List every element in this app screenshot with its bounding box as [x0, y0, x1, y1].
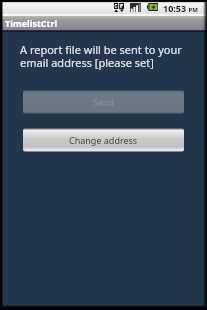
button[interactable]: Change address — [23, 128, 184, 152]
staticText: PM — [187, 6, 198, 14]
button[interactable]: Send — [23, 90, 184, 114]
staticText: TimelistCtrl — [5, 17, 58, 29]
staticText: Send — [93, 96, 115, 108]
staticText: Change address — [69, 134, 138, 146]
staticText: A report file will be sent to your email… — [20, 42, 187, 70]
staticText: 10:53 — [163, 2, 187, 14]
